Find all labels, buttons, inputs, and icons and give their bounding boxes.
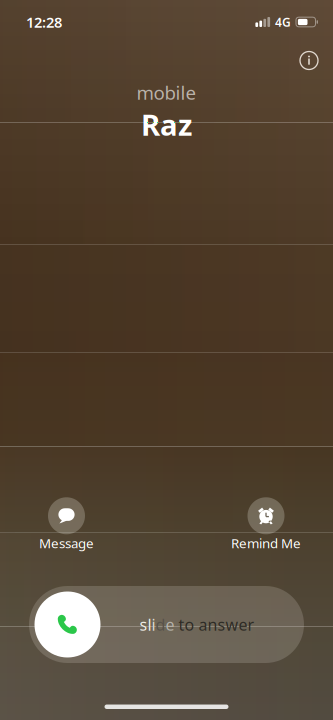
staticText: i xyxy=(151,614,155,635)
button[interactable]: Remind Me xyxy=(231,497,301,552)
button[interactable]: Call details xyxy=(294,45,324,75)
staticText: 12:28 xyxy=(26,12,62,32)
staticText: to answer xyxy=(174,614,254,635)
staticText: 4G xyxy=(275,14,291,30)
staticText: Message xyxy=(39,534,94,552)
button[interactable]: Message xyxy=(39,497,94,552)
staticText: d xyxy=(155,614,165,635)
staticText: e xyxy=(165,614,174,635)
staticText: sl xyxy=(139,614,151,635)
staticText: mobile xyxy=(136,80,196,105)
button[interactable]: sl xyxy=(29,586,304,663)
staticText: Remind Me xyxy=(231,534,301,552)
staticText: Raz xyxy=(141,105,192,144)
